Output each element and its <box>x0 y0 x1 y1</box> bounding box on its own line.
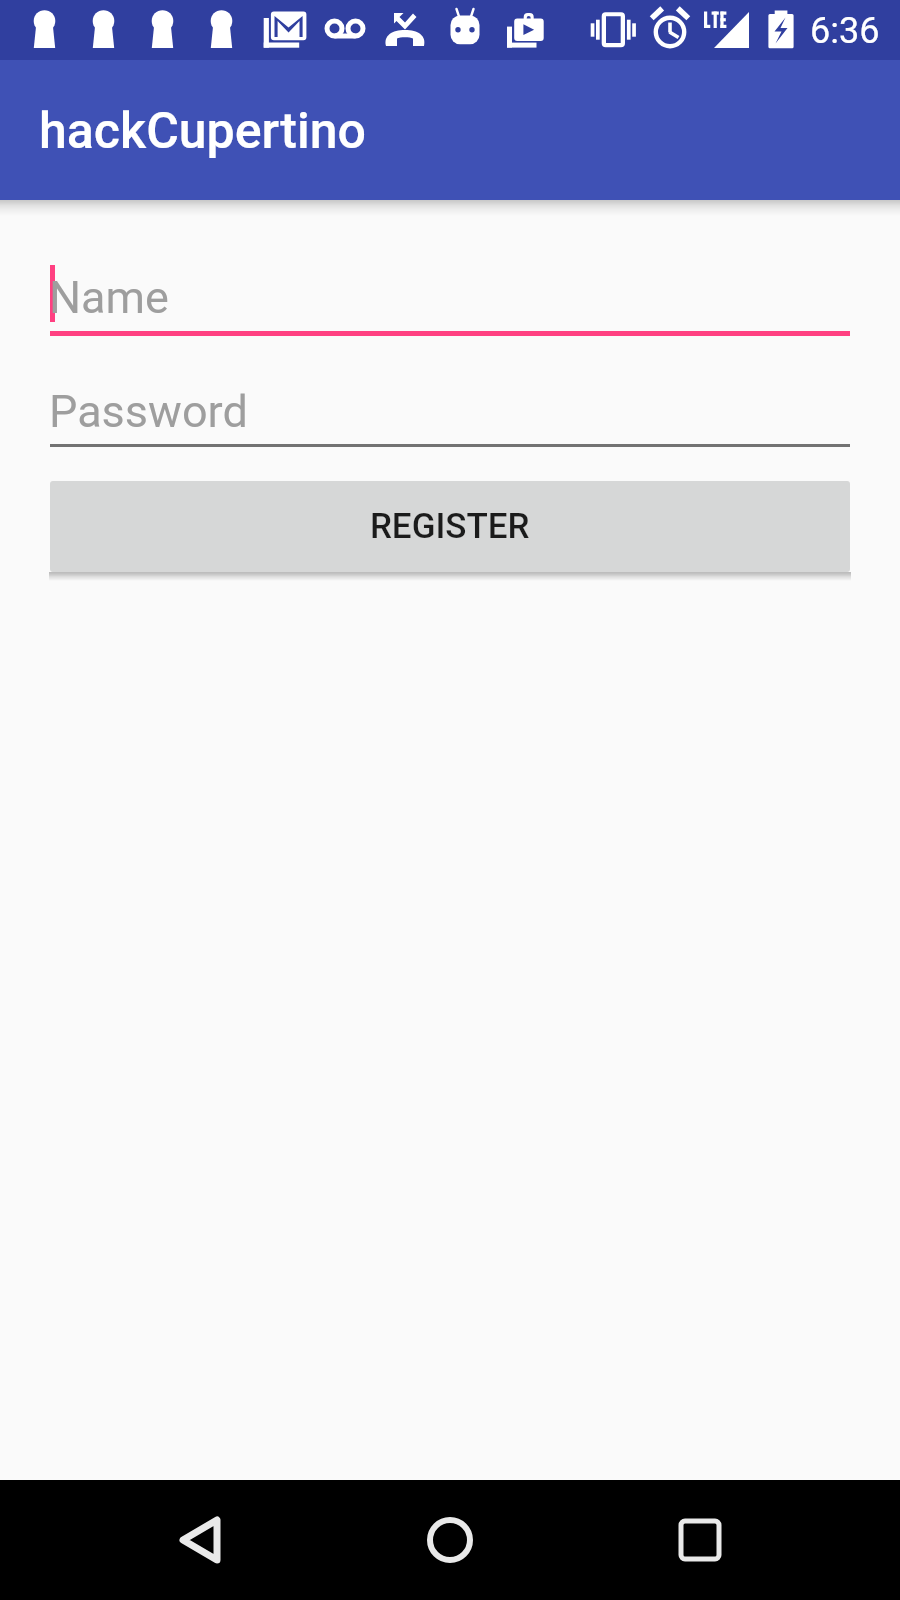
staticText: Name <box>49 271 169 324</box>
button[interactable]: Name <box>50 261 850 336</box>
staticText: REGISTER <box>370 506 530 547</box>
button[interactable]: Password <box>50 389 850 448</box>
staticText: Password <box>49 385 248 438</box>
staticText: 6:36 <box>810 10 880 52</box>
button[interactable]: Back <box>150 1480 250 1600</box>
button[interactable]: Home <box>400 1480 500 1600</box>
button[interactable]: REGISTER <box>50 481 850 572</box>
staticText: hackCupertino <box>39 102 367 161</box>
button[interactable]: Recent apps <box>650 1480 750 1600</box>
